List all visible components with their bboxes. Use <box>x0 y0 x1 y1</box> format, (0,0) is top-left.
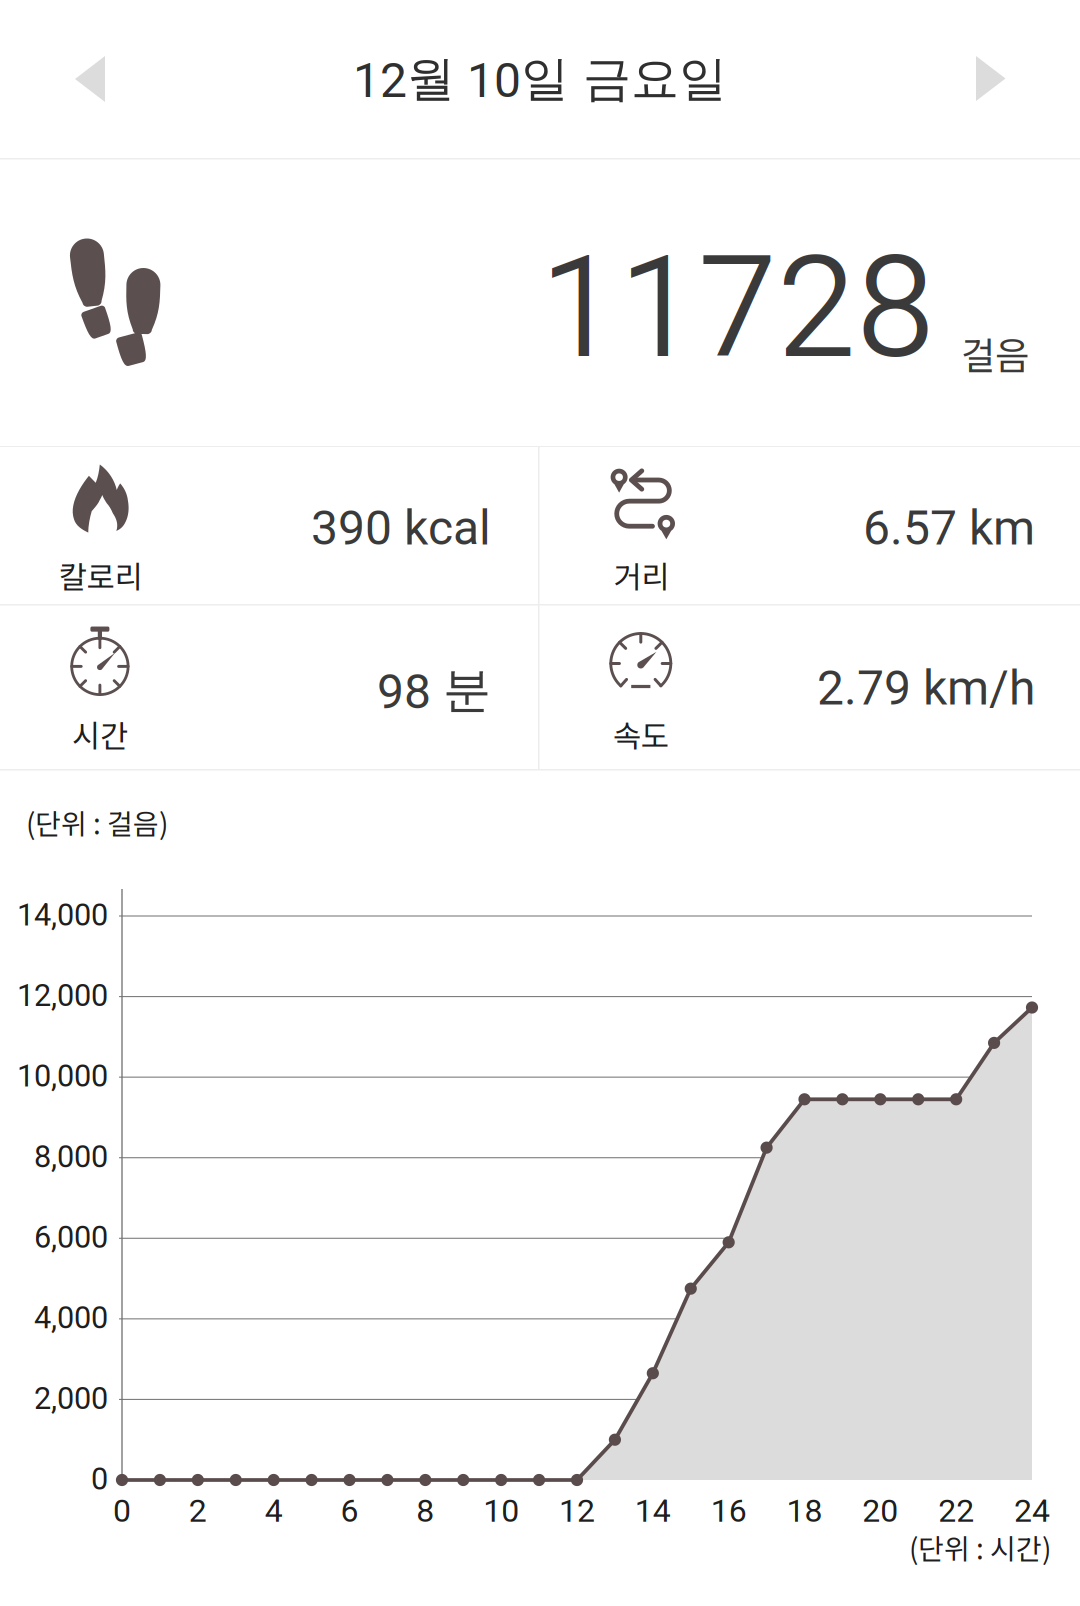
staticText: 12 <box>559 1492 595 1529</box>
button[interactable]: 시간 <box>0 606 538 769</box>
button[interactable]: 속도 <box>540 606 1080 769</box>
staticText: 14,000 <box>17 897 108 933</box>
staticText: 16 <box>711 1492 747 1529</box>
button[interactable]: Next day <box>931 46 1051 156</box>
staticText: 14 <box>635 1492 671 1529</box>
staticText: 8,000 <box>34 1139 108 1175</box>
staticText: 18 <box>786 1492 822 1529</box>
staticText: 칼로리 <box>59 553 143 597</box>
staticText: 20 <box>862 1492 898 1529</box>
staticText: 4 <box>265 1492 283 1529</box>
staticText: (단위 : 시간) <box>909 1527 1051 1567</box>
staticText: 98 분 <box>377 660 491 720</box>
staticText: 0 <box>113 1492 131 1529</box>
staticText: 시간 <box>72 712 128 756</box>
staticText: 2,000 <box>34 1380 108 1416</box>
staticText: 6.57 km <box>863 500 1035 556</box>
staticText: 12월 10일 금요일 <box>353 49 727 109</box>
staticText: 10 <box>483 1492 519 1529</box>
staticText: 4,000 <box>34 1300 108 1336</box>
staticText: 24 <box>1014 1492 1050 1529</box>
staticText: 걸음 <box>961 326 1029 380</box>
staticText: (단위 : 걸음) <box>26 802 168 842</box>
staticText: 8 <box>416 1492 434 1529</box>
staticText: 0 <box>91 1461 108 1497</box>
staticText: 12,000 <box>17 978 108 1013</box>
staticText: 6,000 <box>34 1219 108 1255</box>
staticText: 속도 <box>613 712 669 756</box>
staticText: 11728 <box>540 225 935 391</box>
staticText: 2 <box>189 1492 207 1529</box>
button[interactable]: 거리 <box>540 447 1080 604</box>
staticText: 6 <box>340 1492 358 1529</box>
button[interactable]: 칼로리 <box>0 447 538 604</box>
staticText: 390 kcal <box>311 500 491 556</box>
staticText: 10,000 <box>17 1058 108 1094</box>
staticText: 2.79 km/h <box>817 660 1035 716</box>
staticText: 22 <box>938 1492 974 1529</box>
staticText: 거리 <box>613 553 669 597</box>
button[interactable]: Previous day <box>45 46 165 156</box>
